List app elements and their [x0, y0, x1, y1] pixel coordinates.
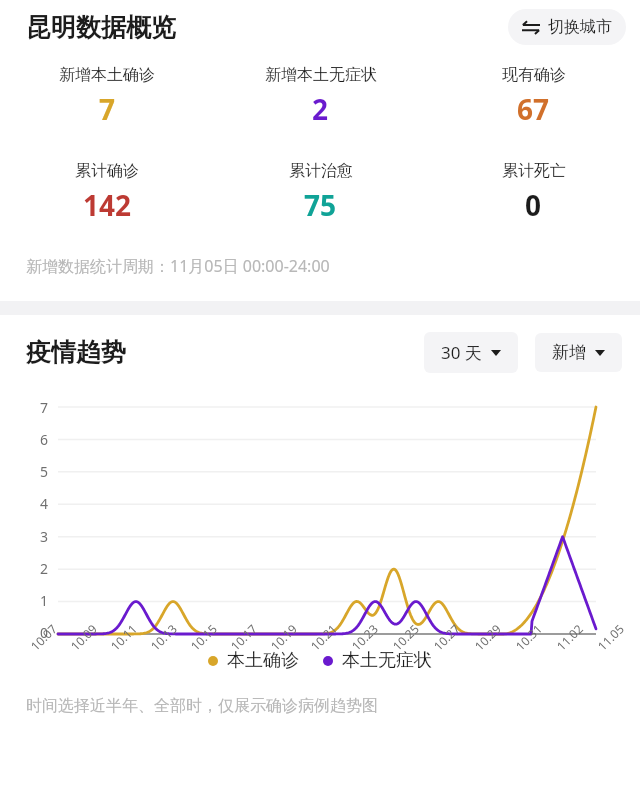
staticText: 10.27	[430, 620, 463, 654]
staticText: 现有确诊	[502, 65, 566, 85]
button[interactable]: Select time range	[424, 332, 518, 373]
staticText: 67	[517, 90, 550, 128]
staticText: 0	[525, 186, 542, 224]
staticText: 10.11	[107, 620, 140, 654]
staticText: 累计治愈	[289, 161, 353, 181]
staticText: 本土确诊	[227, 649, 299, 672]
staticText: 30 天	[441, 341, 482, 364]
staticText: 10.21	[307, 620, 340, 654]
staticText: 7	[99, 90, 116, 128]
staticText: 10.25	[389, 620, 422, 654]
staticText: 累计死亡	[502, 161, 566, 181]
button[interactable]: 累计确诊	[0, 161, 214, 224]
staticText: 新增	[552, 342, 586, 363]
staticText: 4	[40, 494, 49, 513]
button[interactable]: Select metric	[535, 333, 622, 372]
staticText: 6	[40, 430, 49, 449]
staticText: 1	[40, 591, 49, 610]
button[interactable]: 新增本土确诊	[0, 65, 214, 128]
staticText: 昆明数据概览	[26, 12, 176, 43]
button[interactable]: 现有确诊	[427, 65, 640, 128]
staticText: 累计确诊	[75, 161, 139, 181]
staticText: 10.07	[27, 620, 60, 654]
staticText: 新增本土确诊	[59, 65, 155, 85]
staticText: 75	[304, 186, 337, 224]
button[interactable]: Switch city	[508, 9, 626, 45]
staticText: 本土无症状	[342, 649, 432, 672]
staticText: 新增数据统计周期：11月05日 00:00-24:00	[26, 255, 330, 277]
staticText: 11.05	[594, 620, 627, 654]
staticText: 11.02	[553, 620, 586, 654]
staticText: 7	[40, 398, 49, 417]
button[interactable]: 新增本土无症状	[214, 65, 427, 128]
staticText: 新增本土无症状	[265, 65, 377, 85]
staticText: 10.19	[267, 620, 300, 654]
staticText: 10.13	[147, 620, 180, 654]
button[interactable]: 累计治愈	[214, 161, 427, 224]
staticText: 10.29	[471, 620, 504, 654]
staticText: 2	[312, 90, 329, 128]
staticText: 切换城市	[548, 17, 612, 37]
staticText: 0	[40, 623, 49, 642]
staticText: 10.31	[512, 620, 545, 654]
staticText: 疫情趋势	[26, 337, 126, 368]
staticText: 10.15	[187, 620, 220, 654]
staticText: 142	[83, 186, 132, 224]
staticText: 10.09	[67, 620, 100, 654]
staticText: 5	[40, 462, 49, 481]
staticText: 2	[40, 559, 49, 578]
staticText: 10.17	[227, 620, 260, 654]
staticText: 10.23	[348, 620, 381, 654]
button[interactable]: 累计死亡	[427, 161, 640, 224]
staticText: 时间选择近半年、全部时，仅展示确诊病例趋势图	[26, 696, 378, 716]
staticText: 3	[40, 527, 49, 546]
